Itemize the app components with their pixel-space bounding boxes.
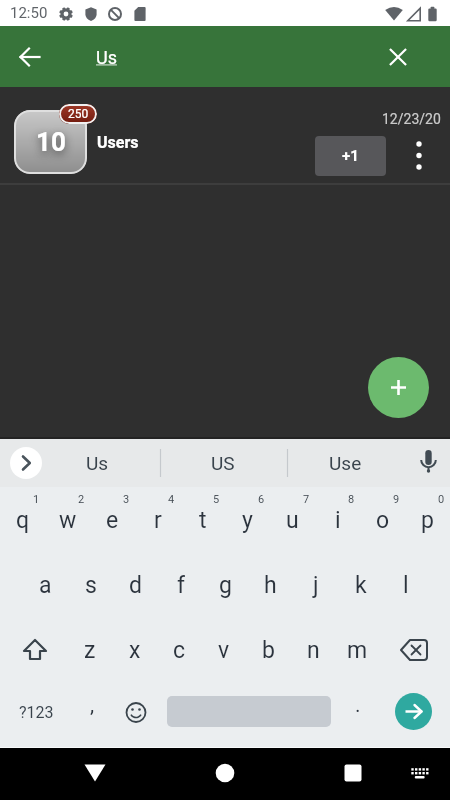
staticText: , (90, 693, 95, 718)
staticText: Us (96, 47, 117, 68)
staticText: 12/23/20 (382, 111, 441, 126)
button[interactable]: c (157, 619, 201, 681)
staticText: e (106, 507, 119, 534)
button[interactable] (8, 623, 62, 677)
button[interactable]: s (68, 554, 113, 616)
staticText: d (129, 572, 142, 599)
staticText: m (347, 637, 368, 664)
button[interactable]: +1 (315, 136, 386, 176)
button[interactable]: a (23, 554, 68, 616)
staticText: y (242, 507, 253, 534)
staticText: z (84, 637, 96, 664)
button[interactable]: g (203, 554, 248, 616)
button[interactable] (10, 447, 42, 479)
button[interactable]: x (113, 619, 157, 681)
button[interactable]: . (336, 677, 380, 733)
button[interactable]: j (293, 554, 338, 616)
staticText: Use (329, 452, 362, 474)
button[interactable]: f (158, 554, 203, 616)
staticText: l (403, 572, 409, 599)
staticText: i (335, 507, 341, 534)
button[interactable] (6, 33, 54, 81)
staticText: ?123 (19, 703, 54, 722)
staticText: h (264, 572, 277, 599)
staticText: +1 (342, 147, 359, 165)
button[interactable] (403, 131, 435, 175)
staticText: 4 (168, 493, 175, 506)
button[interactable]: l (383, 554, 428, 616)
staticText: 7 (303, 493, 310, 506)
staticText: Users (97, 133, 139, 152)
staticText: f (177, 572, 185, 599)
button[interactable]: Use (305, 439, 385, 487)
staticText: o (376, 507, 390, 534)
staticText: b (262, 637, 275, 664)
staticText: 6 (258, 493, 265, 506)
staticText: 3 (123, 493, 130, 506)
staticText: c (173, 637, 186, 664)
button[interactable] (412, 445, 446, 479)
staticText: 5 (213, 493, 220, 506)
button[interactable]: u (270, 489, 315, 551)
button[interactable] (395, 693, 432, 730)
staticText: 1 (33, 493, 40, 506)
button[interactable]: r (135, 489, 180, 551)
staticText: 2 (78, 493, 85, 506)
button[interactable]: n (291, 619, 335, 681)
button[interactable]: d (113, 554, 158, 616)
staticText: g (219, 572, 232, 599)
button[interactable]: v (202, 619, 246, 681)
button[interactable] (405, 755, 439, 793)
button[interactable]: , (70, 677, 114, 733)
button[interactable]: i (315, 489, 360, 551)
button[interactable]: 10 (0, 87, 450, 184)
staticText: 12:50 (10, 4, 48, 22)
button[interactable]: m (335, 619, 379, 681)
staticText: . (355, 693, 361, 718)
staticText: 10 (36, 127, 66, 157)
button[interactable] (71, 749, 119, 797)
button[interactable] (387, 623, 441, 677)
staticText: r (154, 507, 162, 534)
staticText: t (199, 507, 207, 534)
staticText: v (218, 637, 230, 664)
button[interactable]: p (405, 489, 450, 551)
button[interactable] (368, 357, 429, 418)
button[interactable]: q (0, 489, 45, 551)
button[interactable] (114, 690, 158, 734)
button[interactable]: b (246, 619, 290, 681)
staticText: 9 (393, 493, 400, 506)
button[interactable]: w (45, 489, 90, 551)
staticText: x (129, 637, 141, 664)
button[interactable]: h (248, 554, 293, 616)
button[interactable]: o (360, 489, 405, 551)
staticText: p (421, 507, 434, 534)
staticText: n (307, 637, 320, 664)
button[interactable]: t (180, 489, 225, 551)
button[interactable]: ?123 (8, 684, 64, 740)
staticText: u (286, 507, 299, 534)
staticText: 250 (68, 107, 89, 121)
staticText: w (59, 507, 77, 534)
button[interactable]: Us (57, 439, 137, 487)
staticText: a (39, 572, 52, 599)
button[interactable]: e (90, 489, 135, 551)
staticText: US (211, 452, 235, 474)
button[interactable]: k (338, 554, 383, 616)
button[interactable]: z (68, 619, 112, 681)
staticText: 0 (438, 493, 445, 506)
staticText: j (313, 572, 319, 599)
button[interactable]: US (183, 439, 263, 487)
staticText: 8 (348, 493, 355, 506)
button[interactable] (201, 749, 249, 797)
staticText: s (85, 572, 97, 599)
button[interactable]: Us (86, 33, 126, 81)
staticText: Us (86, 452, 109, 474)
staticText: q (16, 507, 30, 534)
staticText: k (355, 572, 367, 599)
button[interactable]: y (225, 489, 270, 551)
button[interactable] (329, 749, 377, 797)
button[interactable] (374, 33, 422, 81)
